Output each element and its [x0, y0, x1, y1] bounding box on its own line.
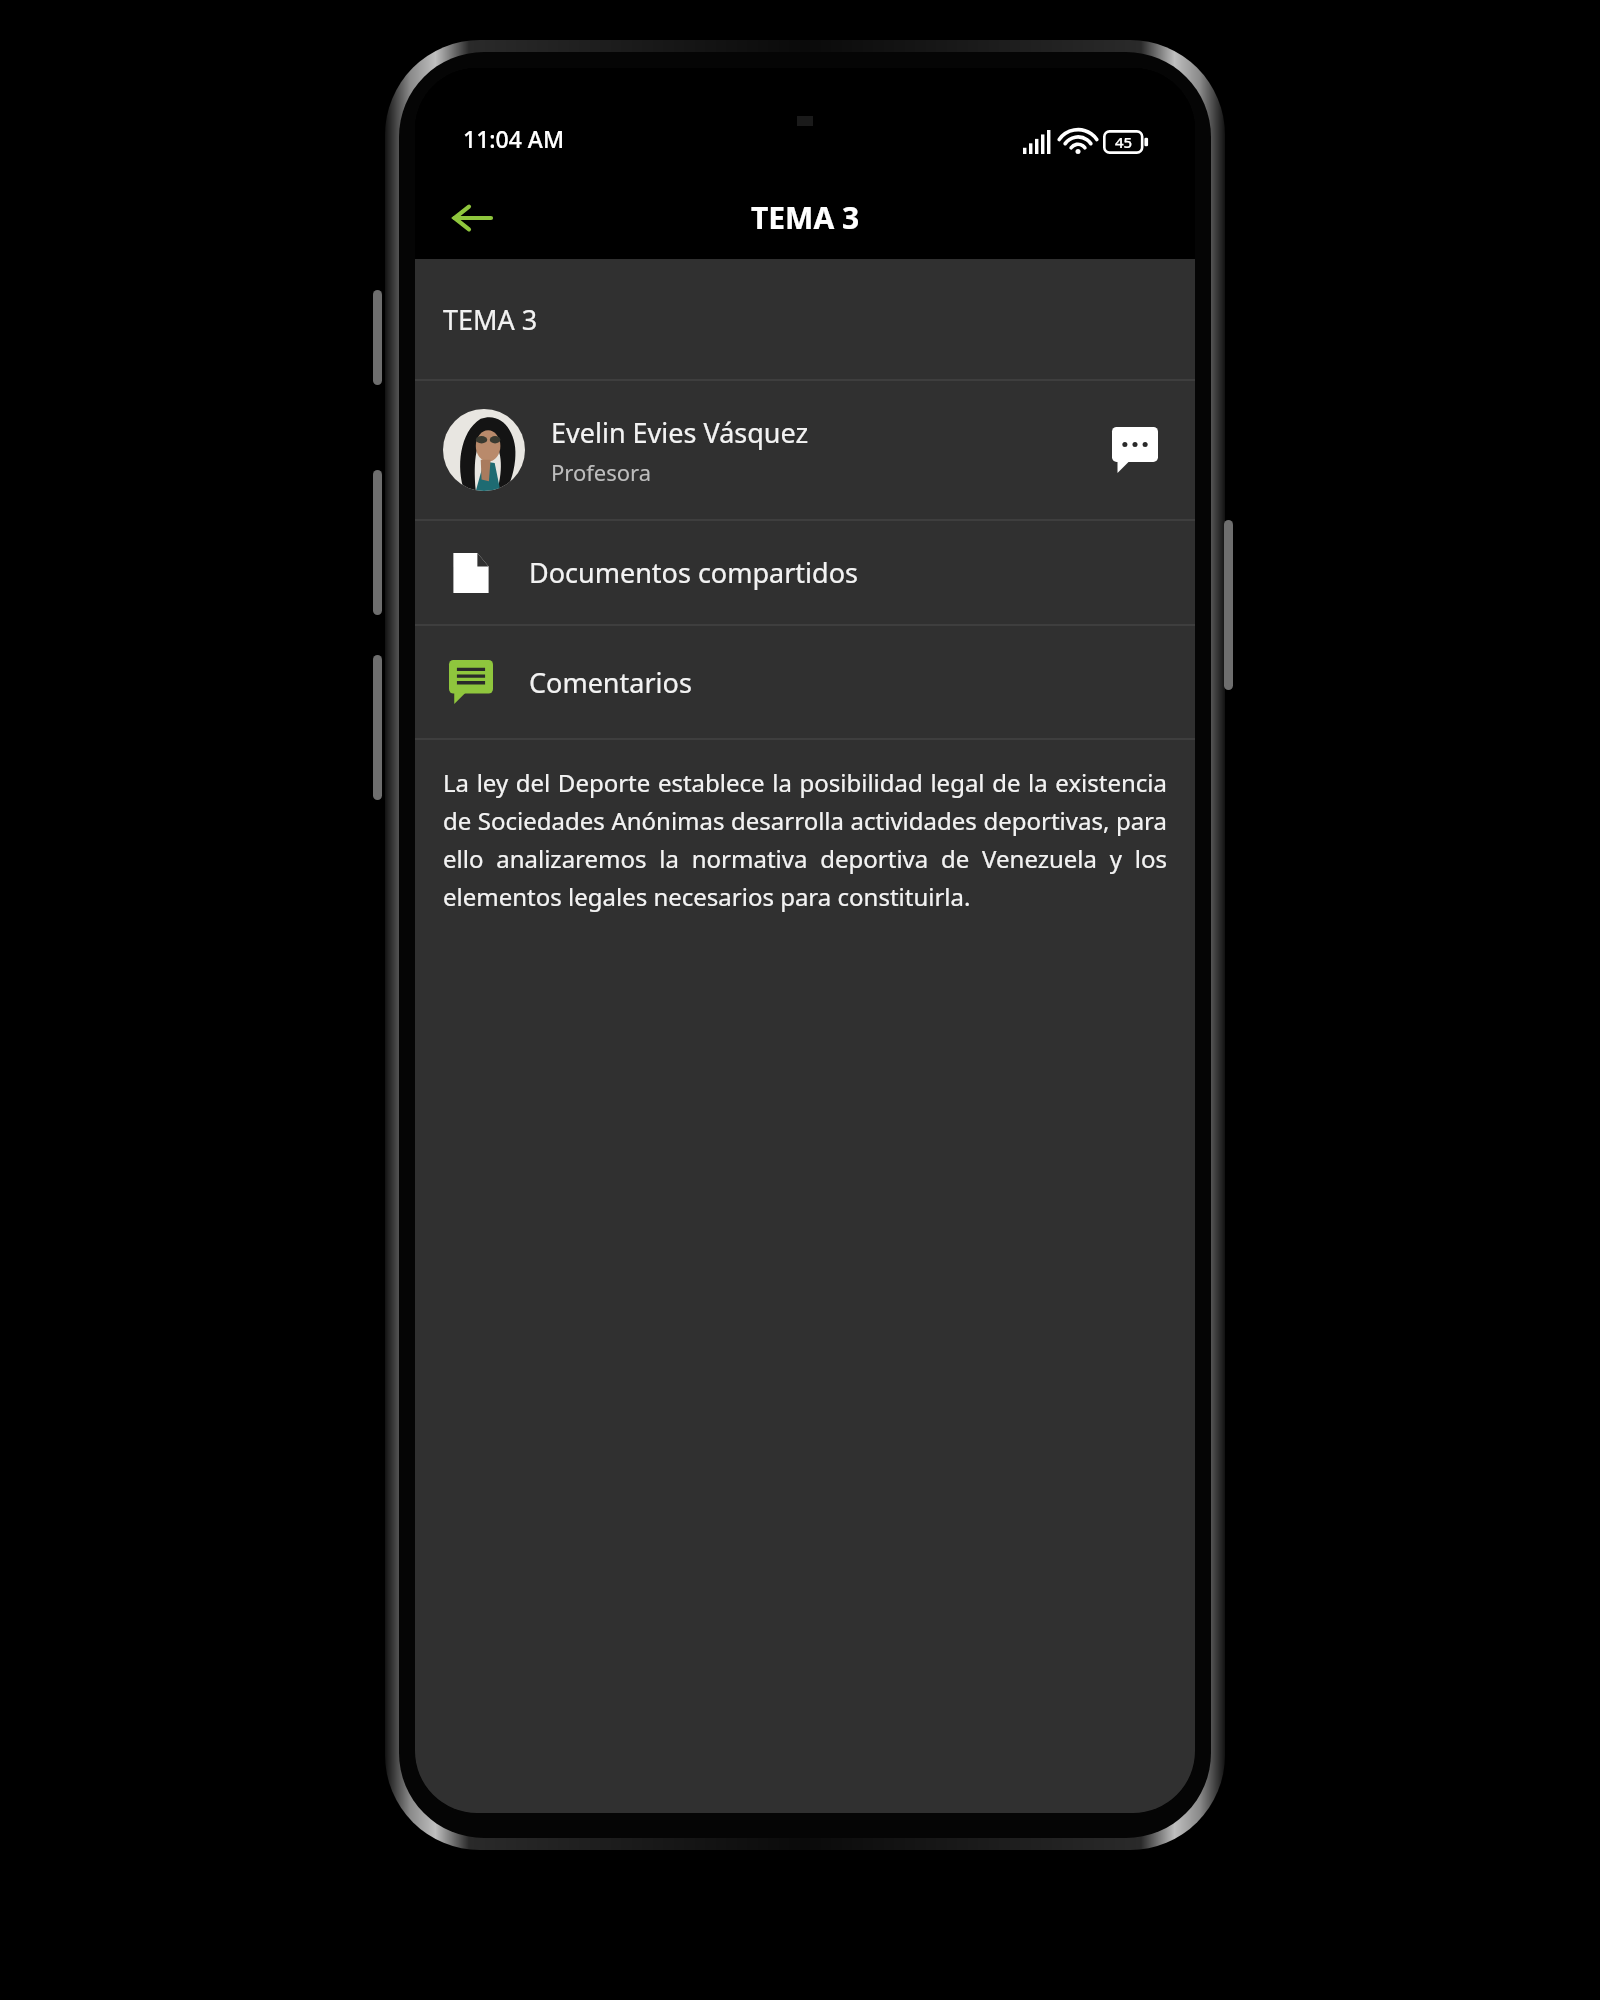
staticText: Evelin Evies Vásquez — [551, 414, 809, 451]
staticText: 11:04 AM — [463, 123, 565, 154]
staticText: TEMA 3 — [751, 197, 860, 238]
button[interactable]: Documentos compartidos — [415, 521, 1195, 624]
staticText: Documentos compartidos — [529, 554, 858, 591]
staticText: TEMA 3 — [443, 301, 538, 338]
staticText: La ley del Deporte establece la posibili… — [443, 766, 1167, 913]
staticText: Profesora — [551, 457, 652, 487]
button[interactable]: Atrás — [441, 187, 503, 249]
staticText: Comentarios — [529, 664, 692, 701]
button[interactable]: Mensajes — [1103, 418, 1167, 482]
staticText: 45 — [1115, 132, 1133, 152]
button[interactable]: Evelin Evies Vásquez — [415, 381, 1195, 519]
button[interactable]: Comentarios — [415, 626, 1195, 738]
